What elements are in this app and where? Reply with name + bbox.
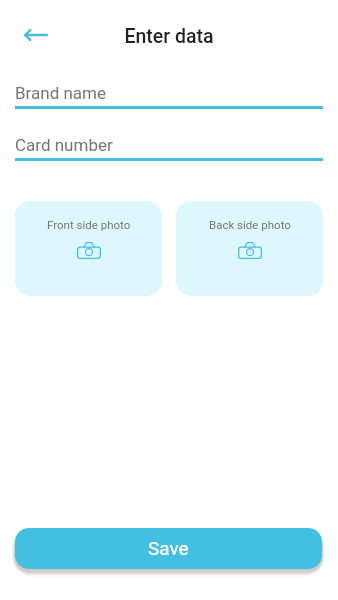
- staticText: Back side photo: [209, 218, 291, 231]
- button[interactable]: Front side photo: [15, 201, 162, 296]
- staticText: Front side photo: [47, 218, 131, 231]
- button[interactable]: Back: [12, 11, 60, 59]
- staticText: Enter data: [0, 25, 338, 48]
- button[interactable]: Back side photo: [176, 201, 323, 296]
- staticText: Card number: [15, 135, 113, 155]
- staticText: Brand name: [15, 83, 107, 103]
- staticText: Save: [148, 537, 189, 559]
- button[interactable]: Card number: [15, 135, 323, 161]
- button[interactable]: Brand name: [15, 83, 323, 109]
- button[interactable]: Save: [15, 528, 322, 569]
